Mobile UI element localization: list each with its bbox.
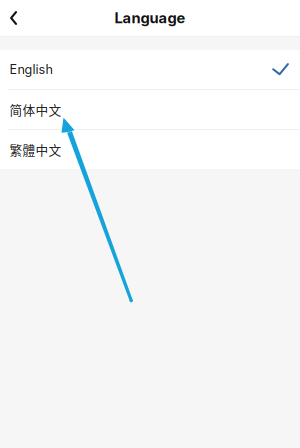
- staticText: 简体中文: [9, 100, 61, 119]
- button[interactable]: English: [0, 50, 300, 90]
- button[interactable]: 繁體中文: [0, 130, 300, 169]
- button[interactable]: 简体中文: [0, 90, 300, 130]
- staticText: 繁體中文: [9, 140, 61, 159]
- staticText: English: [9, 62, 52, 77]
- button[interactable]: Back: [0, 0, 32, 36]
- staticText: Language: [114, 9, 185, 27]
